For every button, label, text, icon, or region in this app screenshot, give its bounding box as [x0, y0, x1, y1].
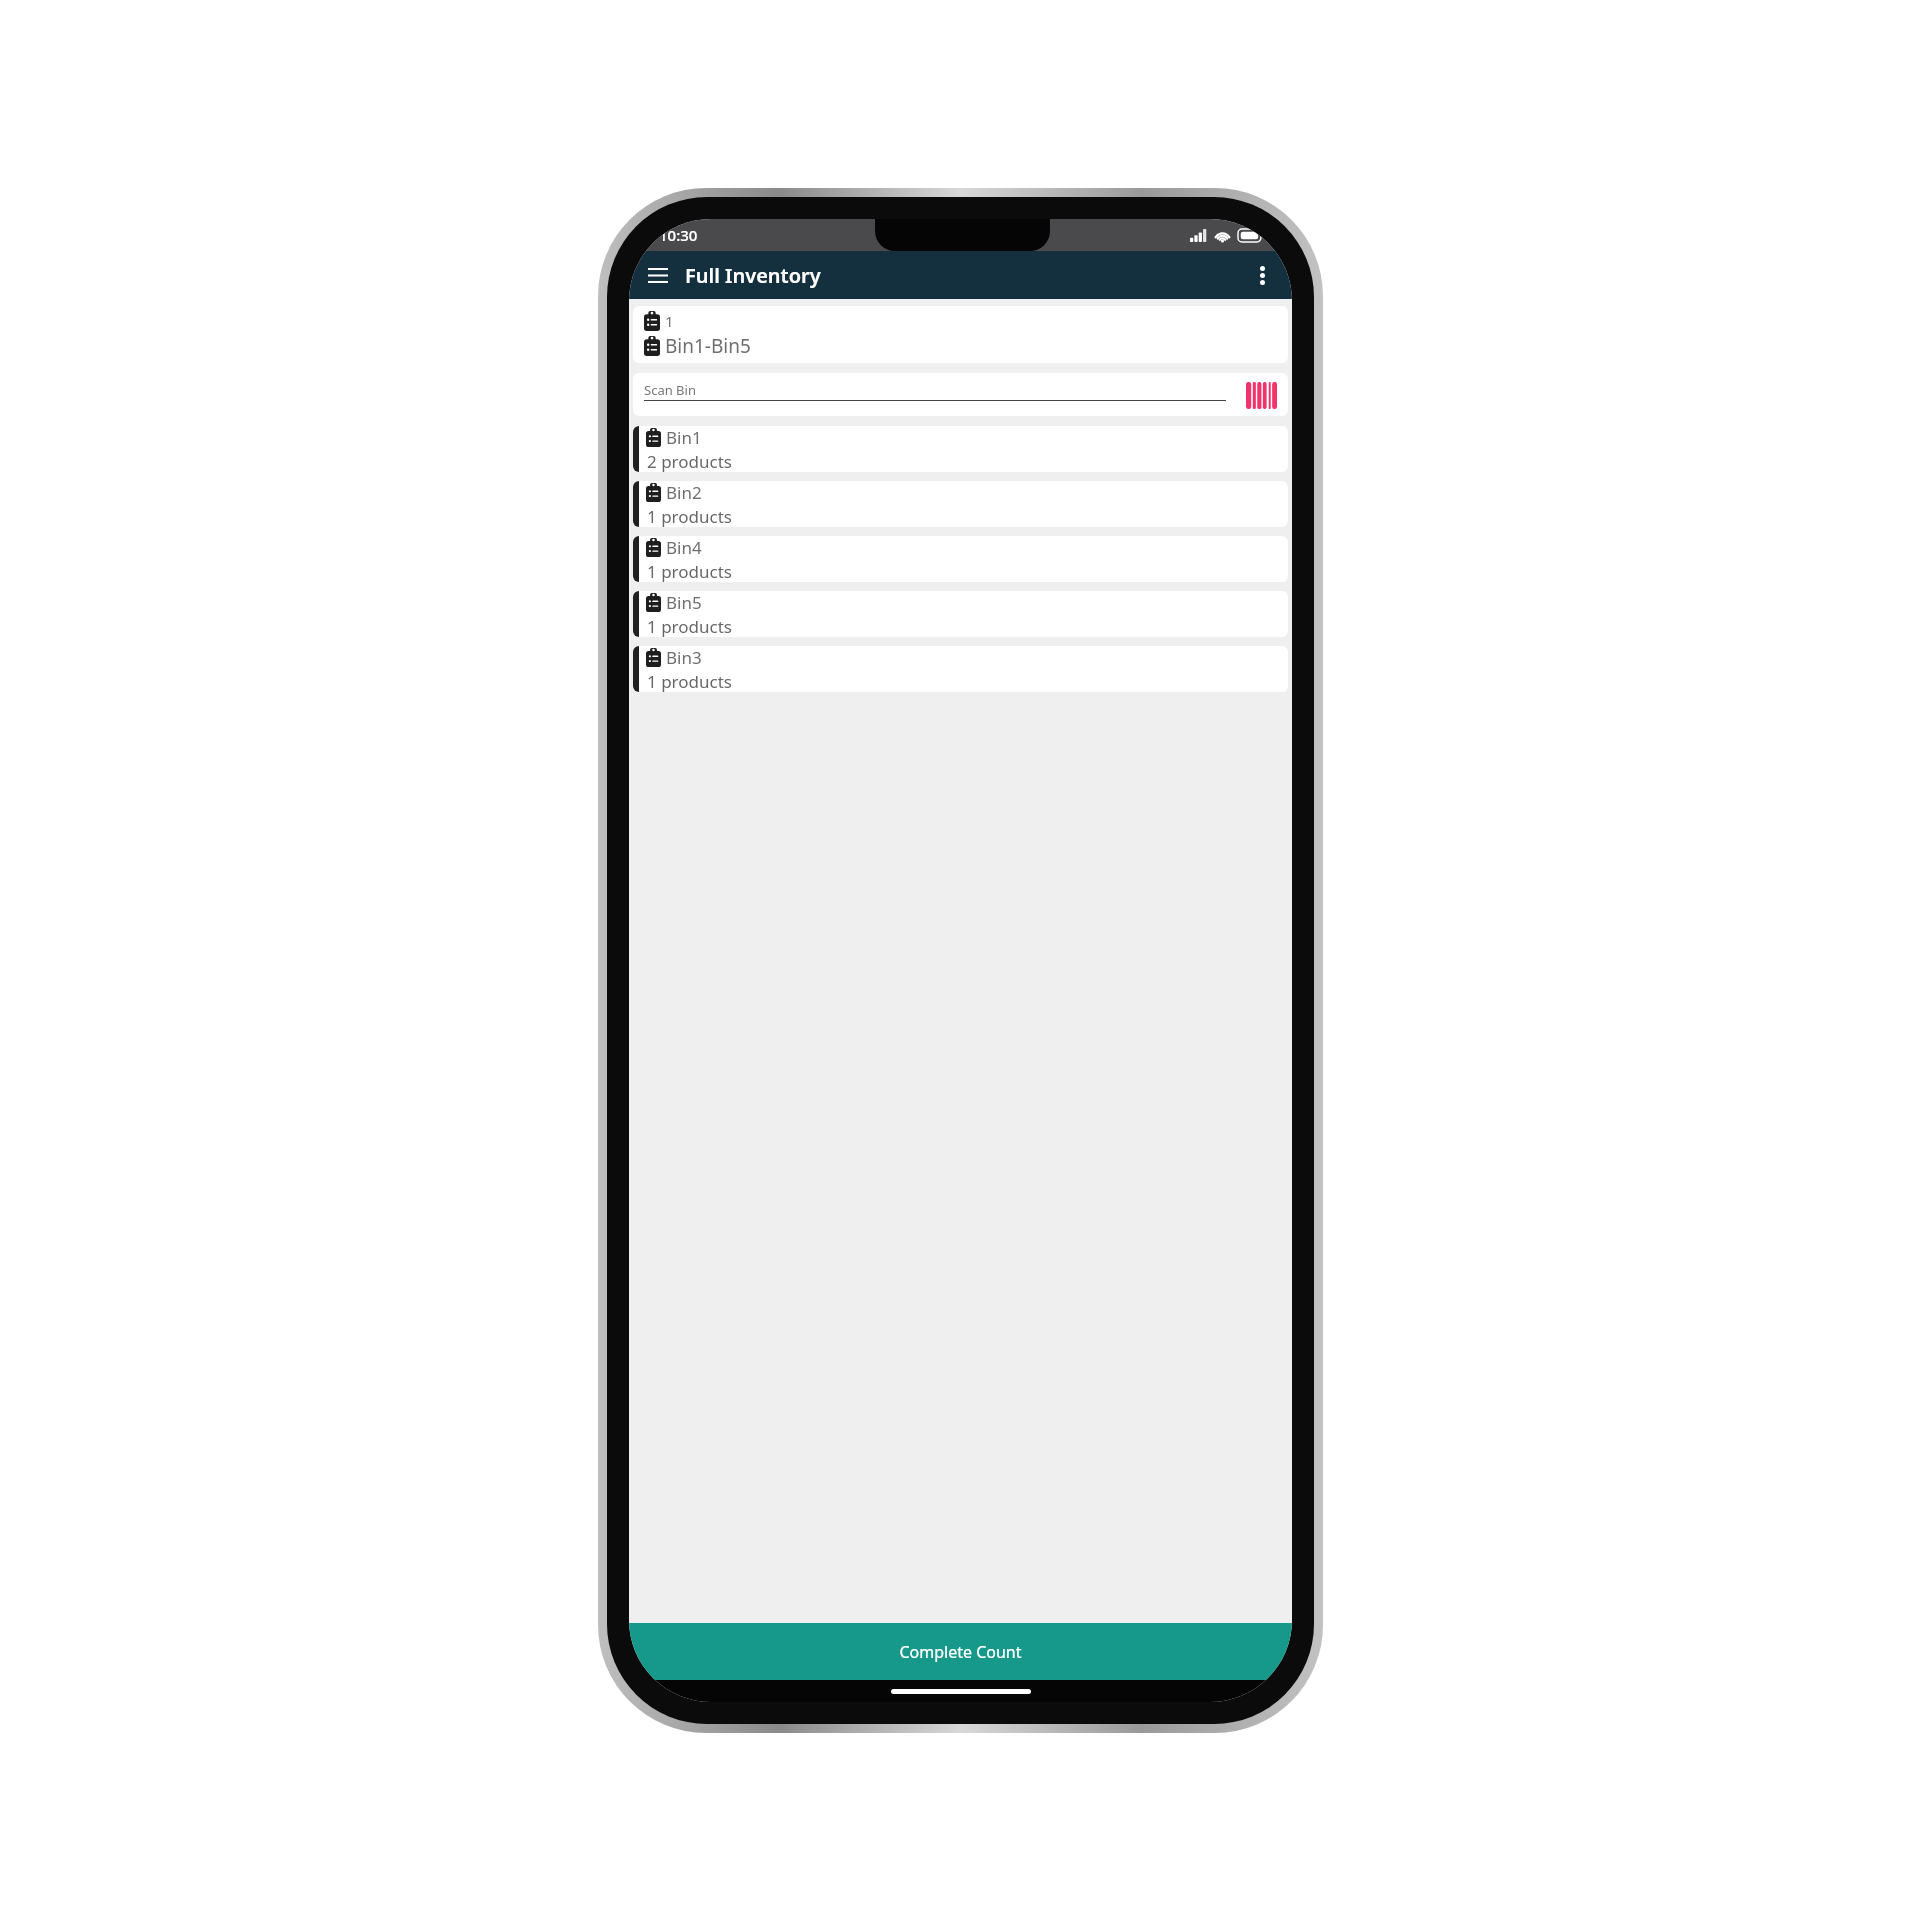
button[interactable]: Scan barcode — [1243, 379, 1279, 411]
staticText: Full Inventory — [685, 262, 821, 289]
staticText: 1 — [665, 311, 674, 331]
staticText: 2 products — [647, 450, 732, 472]
staticText: Bin2 — [666, 481, 702, 504]
staticText: Bin3 — [666, 646, 702, 669]
button[interactable]: Bin1 — [633, 426, 1288, 472]
staticText: Bin4 — [666, 536, 702, 559]
button[interactable]: Bin4 — [633, 536, 1288, 582]
staticText: 1 products — [647, 670, 732, 692]
staticText: Bin1 — [666, 426, 702, 449]
staticText: 1 products — [647, 615, 732, 637]
button[interactable]: Bin5 — [633, 591, 1288, 637]
button[interactable]: Open navigation menu — [638, 255, 678, 295]
staticText: Complete Count — [899, 1641, 1022, 1663]
staticText: Scan Bin — [644, 381, 696, 399]
button[interactable]: Bin2 — [633, 481, 1288, 527]
staticText: 1 products — [647, 560, 732, 582]
button[interactable]: 1 — [633, 306, 1288, 363]
button[interactable]: Bin3 — [633, 646, 1288, 692]
staticText: Bin5 — [666, 591, 702, 614]
staticText: 1 products — [647, 505, 732, 527]
staticText: 10:30 — [659, 225, 698, 245]
button[interactable]: More options — [1242, 255, 1282, 295]
button[interactable]: Complete Count — [629, 1623, 1292, 1680]
staticText: Bin1-Bin5 — [665, 333, 751, 359]
button[interactable]: Scan Bin — [633, 373, 1288, 416]
